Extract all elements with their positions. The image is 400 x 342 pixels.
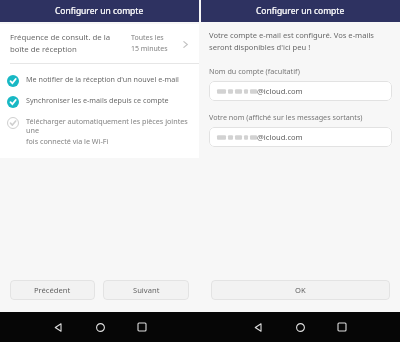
button[interactable]: Accueil — [285, 312, 315, 342]
staticText: OK — [295, 285, 306, 295]
button[interactable]: Fréquence de consult. de la — [0, 24, 199, 63]
staticText: Télécharger automatiquement les pièces j… — [26, 116, 191, 135]
staticText: @icloud.com — [257, 86, 303, 96]
staticText: Votre compte e-mail est configuré. Vos e… — [209, 30, 375, 40]
staticText: Toutes les — [131, 33, 164, 43]
button[interactable]: Précédent — [10, 280, 95, 300]
button[interactable]: Retour — [243, 312, 273, 342]
button[interactable]: @icloud.com — [209, 81, 392, 101]
staticText: Configurer un compte — [55, 5, 144, 17]
button[interactable]: Synchroniser les e-mails depuis ce compt… — [0, 91, 199, 112]
button[interactable]: Applications récentes — [127, 312, 157, 342]
staticText: 15 minutes — [131, 44, 168, 54]
staticText: seront disponibles d'ici peu ! — [209, 42, 311, 52]
staticText: boîte de réception — [10, 44, 77, 55]
staticText: Précédent — [34, 285, 71, 295]
staticText: Nom du compte (facultatif) — [209, 66, 300, 76]
staticText: Synchroniser les e-mails depuis ce compt… — [26, 95, 169, 105]
staticText: Me notifier de la réception d'un nouvel … — [26, 74, 179, 84]
button[interactable]: Me notifier de la réception d'un nouvel … — [0, 70, 199, 91]
button[interactable]: @icloud.com — [209, 127, 392, 147]
button[interactable]: Télécharger automatiquement les pièces j… — [0, 112, 199, 150]
button[interactable]: Accueil — [85, 312, 115, 342]
button[interactable]: Retour — [43, 312, 73, 342]
other: Ouvrir — [177, 36, 193, 52]
staticText: Suivant — [133, 285, 160, 295]
staticText: @icloud.com — [257, 132, 303, 142]
button[interactable]: OK — [211, 280, 390, 300]
staticText: Configurer un compte — [256, 5, 345, 17]
button[interactable]: Applications récentes — [327, 312, 357, 342]
staticText: Votre nom (affiché sur les messages sort… — [209, 112, 363, 122]
staticText: fois connecté via le Wi-Fi — [26, 136, 109, 146]
button[interactable]: Suivant — [103, 280, 189, 300]
staticText: Fréquence de consult. de la — [10, 32, 111, 43]
